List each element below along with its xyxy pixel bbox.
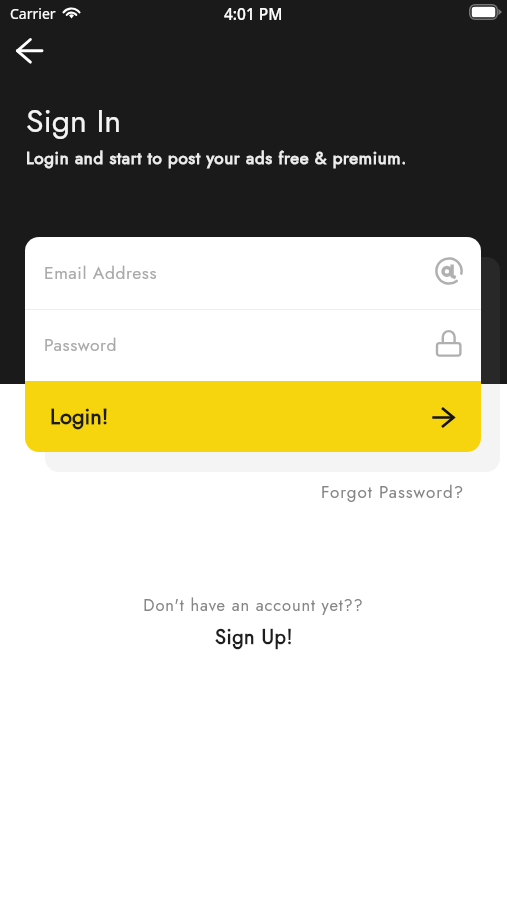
staticText: Forgot Password? bbox=[321, 480, 465, 505]
staticText: Login and start to post your ads free & … bbox=[26, 146, 408, 171]
button[interactable]: Forgot Password? bbox=[312, 472, 474, 513]
staticText: Carrier bbox=[10, 4, 56, 23]
button[interactable]: Sign Up! bbox=[203, 615, 305, 660]
staticText: Sign Up! bbox=[215, 623, 293, 652]
staticText: Email Address bbox=[44, 260, 158, 285]
staticText: Password bbox=[44, 332, 118, 357]
button[interactable]: Email Address bbox=[25, 237, 481, 309]
staticText: Login! bbox=[50, 400, 109, 432]
staticText: 4:01 PM bbox=[224, 3, 283, 24]
button[interactable]: Login! bbox=[25, 381, 481, 452]
button[interactable]: Password bbox=[25, 310, 481, 381]
staticText: Don't have an account yet?? bbox=[143, 593, 364, 617]
button[interactable]: Back bbox=[8, 29, 52, 73]
staticText: Sign In bbox=[26, 98, 122, 144]
